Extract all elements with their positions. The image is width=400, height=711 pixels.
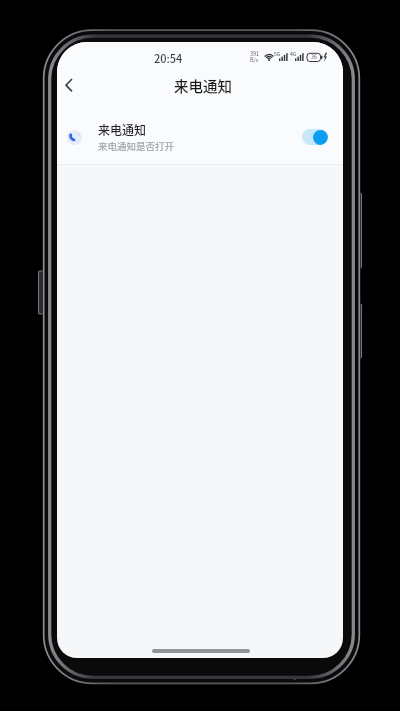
button[interactable]: 来电通知	[57, 114, 343, 164]
staticText: 5G	[274, 50, 281, 57]
staticText: B/s	[250, 56, 259, 64]
button[interactable]	[57, 73, 82, 99]
staticText: 36	[311, 53, 318, 61]
staticText: 来电通知是否打开	[98, 139, 175, 153]
staticText: 来电通知	[98, 121, 147, 138]
staticText: 391	[250, 50, 260, 58]
staticText: 4G	[290, 50, 297, 57]
button[interactable]	[302, 129, 328, 145]
staticText: 20:54	[154, 50, 183, 66]
staticText: 来电通知	[174, 75, 232, 96]
